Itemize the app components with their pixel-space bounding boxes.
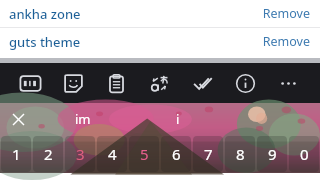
button[interactable]: 8 (225, 136, 255, 172)
staticText: ankha zone (9, 5, 81, 23)
button[interactable]: Info (228, 63, 262, 103)
button[interactable]: 6 (161, 136, 191, 172)
staticText: 7 (204, 144, 213, 164)
button[interactable]: i (130, 103, 225, 135)
staticText: 5 (140, 144, 149, 164)
button[interactable]: Close suggestions (0, 103, 36, 135)
staticText: 6 (172, 144, 181, 164)
button[interactable]: ankha zone (0, 0, 320, 27)
staticText: Remove (262, 5, 310, 22)
button[interactable]: 4 (97, 136, 127, 172)
button[interactable]: Check (185, 63, 219, 103)
button[interactable] (225, 103, 320, 135)
button[interactable]: 5 (129, 136, 159, 172)
button[interactable]: 1 (1, 136, 31, 172)
staticText: 4 (108, 144, 117, 164)
button[interactable]: GIF (13, 63, 47, 103)
button[interactable]: 3 (65, 136, 95, 172)
button[interactable]: guts theme (0, 28, 320, 55)
staticText: i (176, 110, 180, 128)
staticText: im (75, 110, 91, 128)
button[interactable]: 7 (193, 136, 223, 172)
button[interactable]: 9 (257, 136, 287, 172)
button[interactable]: Clipboard (99, 63, 133, 103)
button[interactable]: im (36, 103, 130, 135)
staticText: 9 (268, 144, 277, 164)
staticText: 0 (300, 144, 309, 164)
staticText: Remove (262, 33, 310, 50)
button[interactable]: Remove (262, 33, 310, 50)
button[interactable]: Translate (142, 63, 176, 103)
button[interactable]: Remove (262, 5, 310, 22)
staticText: 2 (44, 144, 53, 164)
staticText: 3 (76, 144, 85, 164)
button[interactable]: 0 (289, 136, 319, 172)
staticText: 1 (12, 144, 21, 164)
button[interactable]: Stickers (56, 63, 90, 103)
staticText: guts theme (9, 33, 81, 51)
button[interactable]: 2 (33, 136, 63, 172)
button[interactable]: More options (271, 63, 305, 103)
staticText: 8 (236, 144, 245, 164)
